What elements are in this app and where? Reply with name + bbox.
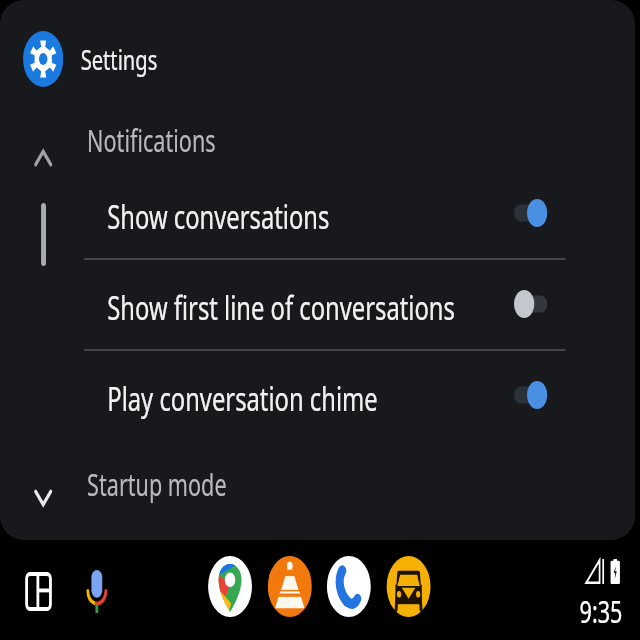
staticText: Show conversations: [107, 194, 330, 239]
button[interactable]: VLC: [268, 556, 312, 617]
button[interactable]: Google Assistant: [71, 556, 122, 626]
button[interactable]: Phone: [327, 556, 371, 617]
button[interactable]: Startup mode: [0, 458, 635, 512]
button[interactable]: Show first line of conversations: [0, 262, 635, 353]
button[interactable]: Drive: [387, 556, 430, 617]
staticText: Notifications: [87, 120, 216, 161]
button[interactable]: Show conversations: [0, 171, 635, 262]
staticText: Startup mode: [87, 464, 227, 505]
staticText: Settings: [81, 40, 158, 78]
button[interactable]: Dashboard: [13, 556, 63, 626]
button[interactable]: Maps: [208, 556, 252, 617]
button[interactable]: Notifications: [0, 112, 635, 164]
staticText: Show first line of conversations: [107, 285, 455, 330]
staticText: 9:35: [580, 591, 623, 632]
staticText: Play conversation chime: [107, 376, 378, 421]
button[interactable]: Settings: [23, 31, 158, 87]
button[interactable]: Play conversation chime: [0, 353, 635, 444]
